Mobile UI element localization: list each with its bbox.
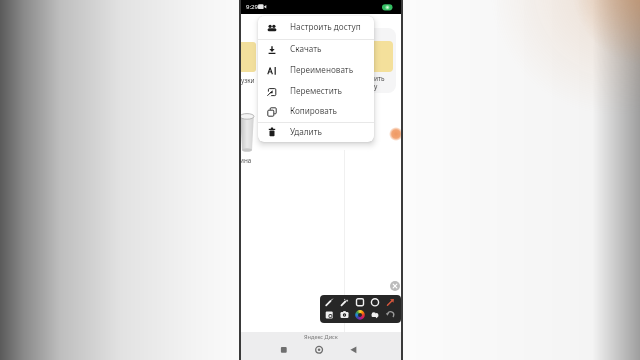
button[interactable] bbox=[344, 341, 362, 359]
staticText: у bbox=[374, 82, 378, 91]
staticText: узки bbox=[241, 76, 255, 85]
staticText: Настроить доступ bbox=[290, 21, 361, 32]
staticText: Яндекс Диск bbox=[304, 333, 338, 341]
staticText: Переместить bbox=[290, 85, 342, 96]
button[interactable] bbox=[310, 341, 328, 359]
button[interactable]: ить bbox=[262, 28, 396, 93]
staticText: 9:29 bbox=[246, 3, 258, 11]
staticText: Скачать bbox=[290, 43, 322, 54]
button[interactable] bbox=[275, 341, 293, 359]
button[interactable]: Копировать bbox=[258, 101, 374, 122]
button[interactable]: Переименовать bbox=[258, 60, 374, 81]
staticText: Переименовать bbox=[290, 64, 354, 75]
staticText: Удалить bbox=[290, 126, 322, 137]
button[interactable]: Переместить bbox=[258, 81, 374, 102]
button[interactable]: Настроить доступ bbox=[258, 16, 374, 39]
staticText: Копировать bbox=[290, 105, 338, 116]
button[interactable]: Скачать bbox=[258, 39, 374, 60]
button[interactable]: Удалить bbox=[258, 122, 374, 142]
button[interactable] bbox=[320, 295, 401, 323]
staticText: ина bbox=[241, 156, 252, 165]
staticText: ить bbox=[374, 74, 385, 83]
button[interactable] bbox=[390, 281, 400, 291]
